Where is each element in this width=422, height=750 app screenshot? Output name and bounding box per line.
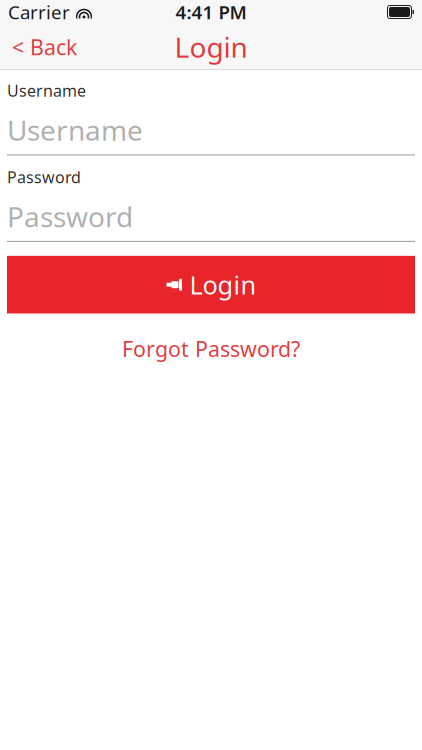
staticText: 4:41 PM (175, 0, 246, 24)
staticText: Carrier (8, 0, 70, 24)
button[interactable]: Login (7, 256, 415, 313)
staticText: Login (174, 28, 247, 66)
button[interactable]: < Back (0, 23, 89, 71)
staticText: Login (189, 268, 256, 301)
button[interactable]: Forgot Password? (108, 328, 314, 369)
staticText: Username (7, 80, 86, 101)
staticText: Username (7, 111, 143, 148)
staticText: Password (7, 198, 133, 235)
staticText: Password (7, 166, 81, 188)
staticText: < Back (12, 33, 77, 61)
staticText: Forgot Password? (122, 334, 300, 363)
